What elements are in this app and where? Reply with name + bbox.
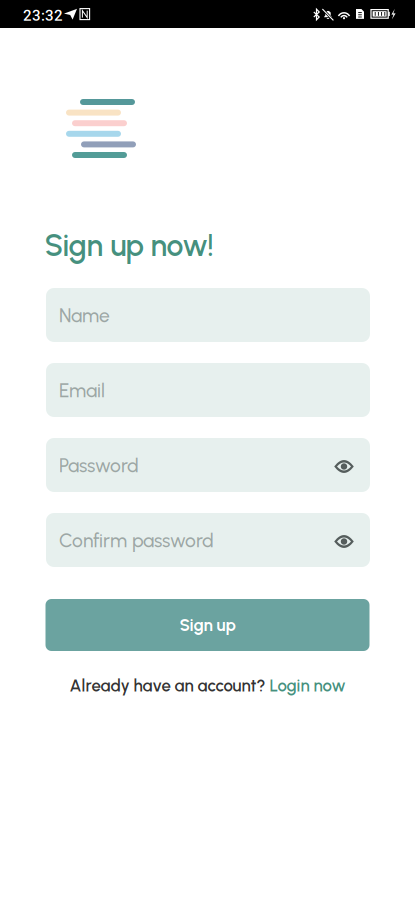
staticText: Login now <box>269 675 345 696</box>
button[interactable]: Sign up <box>45 599 369 651</box>
staticText: Name <box>59 304 110 327</box>
button[interactable]: Email <box>46 363 370 417</box>
staticText: Password <box>59 454 139 477</box>
button[interactable]: Show password <box>328 525 360 557</box>
staticText: Sign up <box>179 615 235 635</box>
staticText: Confirm password <box>59 529 214 552</box>
staticText: Already have an account? <box>69 675 265 696</box>
button[interactable]: Show password <box>328 450 360 482</box>
staticText: 23:32 <box>23 7 63 24</box>
staticText: Email <box>59 379 105 402</box>
staticText: Sign up now! <box>44 227 213 264</box>
button[interactable]: Name <box>46 288 370 342</box>
button[interactable]: Password <box>46 438 370 492</box>
button[interactable]: Login now <box>269 675 345 696</box>
button[interactable]: Confirm password <box>46 513 370 567</box>
